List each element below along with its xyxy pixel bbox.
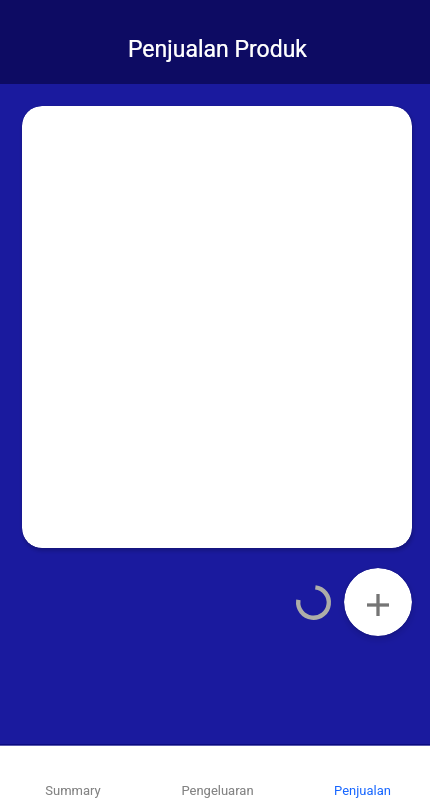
button[interactable]: Pengeluaran bbox=[145, 746, 290, 800]
button[interactable]: Penjualan bbox=[290, 746, 430, 800]
staticText: Penjualan bbox=[334, 783, 391, 798]
button[interactable]: Summary bbox=[0, 746, 145, 800]
button[interactable]: Add product sale bbox=[344, 568, 412, 636]
staticText: Penjualan Produk bbox=[128, 36, 307, 63]
staticText: Pengeluaran bbox=[181, 783, 254, 798]
other: Loading bbox=[296, 585, 331, 620]
staticText: Summary bbox=[45, 783, 101, 798]
button[interactable]: Sales chart card bbox=[22, 106, 412, 548]
